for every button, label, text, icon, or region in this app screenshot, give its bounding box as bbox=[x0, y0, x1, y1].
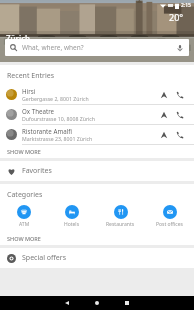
button[interactable]: Post offices bbox=[145, 204, 194, 229]
button[interactable]: Call bbox=[172, 87, 188, 103]
staticText: Hotels bbox=[64, 221, 80, 228]
button[interactable]: Search bbox=[5, 39, 189, 56]
staticText: 20° bbox=[169, 11, 184, 23]
staticText: What, where, when? bbox=[22, 43, 176, 52]
staticText: Restaurants bbox=[106, 221, 135, 228]
button[interactable]: Hotels bbox=[48, 204, 96, 229]
button[interactable]: ATM bbox=[0, 204, 48, 229]
button[interactable]: SHOW MORE bbox=[0, 145, 194, 158]
staticText: Favorites bbox=[22, 166, 52, 176]
button[interactable]: Ox Theatre bbox=[0, 105, 194, 124]
button[interactable]: Directions bbox=[156, 107, 172, 123]
staticText: Hirsi bbox=[22, 87, 36, 95]
button[interactable]: Home bbox=[82, 296, 112, 310]
button[interactable]: Restaurants bbox=[96, 204, 145, 229]
staticText: Marktstrasse 23, 8001 Zürich bbox=[22, 135, 93, 142]
staticText: SHOW MORE bbox=[7, 148, 41, 155]
staticText: Zürich bbox=[6, 33, 31, 44]
button[interactable]: SHOW MORE bbox=[0, 232, 194, 245]
staticText: Ox Theatre bbox=[22, 107, 55, 115]
staticText: Ristorante Amalfi bbox=[22, 127, 72, 135]
staticText: Gerbergasse 2, 8001 Zürich bbox=[22, 95, 89, 102]
staticText: Dufourstrasse 10, 8008 Zürich bbox=[22, 115, 96, 122]
button[interactable]: Recent apps bbox=[112, 296, 142, 310]
staticText: Post offices bbox=[156, 221, 183, 228]
button[interactable]: Special offers bbox=[0, 248, 194, 268]
staticText: 2:15 bbox=[181, 2, 191, 9]
button[interactable]: Directions bbox=[156, 87, 172, 103]
other: Voice search bbox=[176, 44, 184, 52]
button[interactable]: Call bbox=[172, 127, 188, 143]
staticText: Special offers bbox=[22, 253, 67, 263]
button[interactable]: Ristorante Amalfi bbox=[0, 125, 194, 144]
button[interactable]: Directions bbox=[156, 127, 172, 143]
button[interactable]: Hirsi bbox=[0, 85, 194, 104]
button[interactable]: Back bbox=[52, 296, 82, 310]
button[interactable]: Call bbox=[172, 107, 188, 123]
staticText: SHOW MORE bbox=[7, 235, 41, 242]
staticText: Categories bbox=[7, 190, 43, 200]
staticText: Recent Entries bbox=[7, 71, 55, 81]
staticText: ATM bbox=[19, 221, 30, 228]
button[interactable]: Favorites bbox=[0, 161, 194, 181]
other: Search bbox=[10, 44, 17, 51]
